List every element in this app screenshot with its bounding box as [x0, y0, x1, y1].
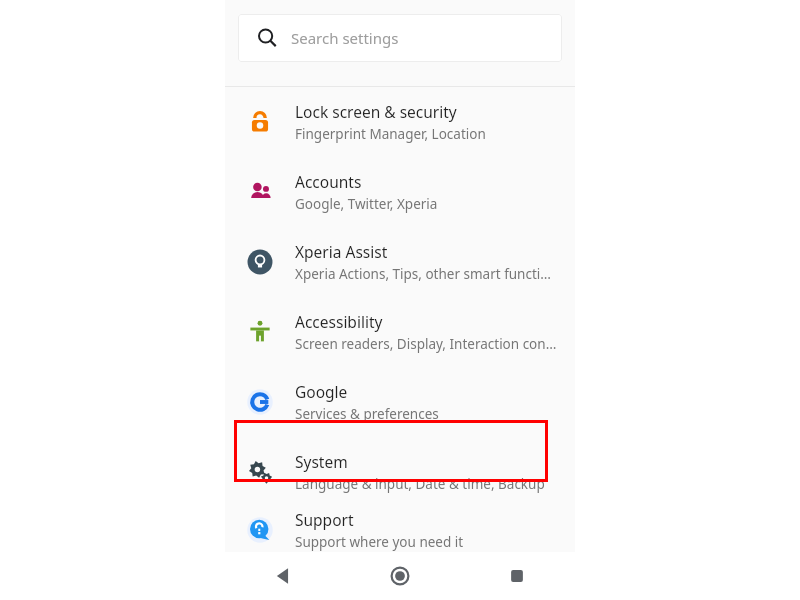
staticText: Lock screen & security — [295, 101, 457, 122]
staticText: Google — [295, 381, 348, 402]
staticText: Screen readers, Display, Interaction con… — [295, 335, 557, 353]
button[interactable]: Accessibility — [225, 297, 575, 367]
staticText: Services & preferences — [295, 405, 439, 423]
staticText: Language & input, Date & time, Backup — [295, 475, 545, 493]
button[interactable]: Google — [225, 367, 575, 437]
staticText: Xperia Actions, Tips, other smart functi… — [295, 265, 557, 283]
button[interactable]: Recents — [458, 552, 575, 600]
button[interactable]: Accounts — [225, 157, 575, 227]
button[interactable]: Back — [225, 552, 341, 600]
button[interactable]: System — [225, 437, 575, 507]
button[interactable]: Lock screen & security — [225, 87, 575, 157]
staticText: Fingerprint Manager, Location — [295, 125, 486, 143]
button[interactable]: Home — [341, 552, 458, 600]
button[interactable]: Xperia Assist — [225, 227, 575, 297]
staticText: Xperia Assist — [295, 241, 388, 262]
staticText: Support where you need it — [295, 533, 464, 551]
button[interactable]: Support — [225, 507, 575, 552]
staticText: Support — [295, 509, 354, 530]
staticText: Accounts — [295, 171, 362, 192]
button[interactable]: Search settings — [238, 14, 562, 62]
staticText: Accessibility — [295, 311, 383, 332]
staticText: System — [295, 451, 348, 472]
staticText: Google, Twitter, Xperia — [295, 195, 438, 213]
staticText: Search settings — [291, 28, 399, 48]
